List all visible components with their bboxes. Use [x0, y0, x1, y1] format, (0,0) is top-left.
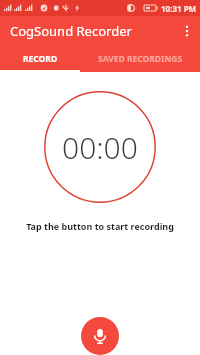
button[interactable]: More options [174, 16, 200, 46]
button[interactable]: Start recording [81, 317, 119, 355]
staticText: SAVED RECORDINGS [98, 53, 183, 65]
button[interactable]: RECORD [0, 46, 80, 72]
staticText: 00:00 [62, 127, 138, 168]
staticText: 10:31 PM [161, 3, 197, 14]
button[interactable]: SAVED RECORDINGS [80, 46, 200, 72]
staticText: Tap the button to start recording [0, 220, 200, 232]
staticText: RECORD [23, 53, 58, 65]
staticText: CogSound Recorder [10, 22, 132, 40]
